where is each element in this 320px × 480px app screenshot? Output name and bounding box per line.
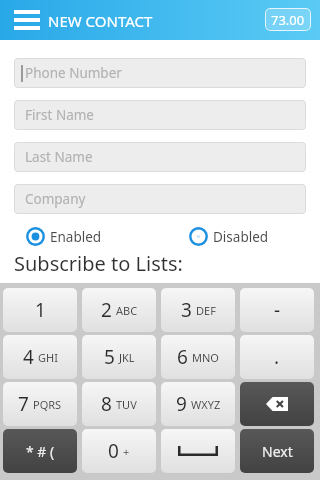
staticText: 7 (18, 391, 29, 417)
button[interactable]: 8 (82, 382, 156, 426)
button[interactable]: Disabled (189, 227, 269, 246)
button[interactable]: Phone Number (14, 58, 306, 88)
staticText: * # ( (26, 442, 55, 461)
staticText: First Name (25, 106, 94, 124)
staticText: - (274, 297, 281, 323)
staticText: MNO (192, 350, 219, 365)
button[interactable]: 3 (161, 288, 235, 332)
staticText: 2 (101, 297, 112, 323)
staticText: WXYZ (191, 397, 221, 412)
staticText: ABC (116, 303, 138, 318)
staticText: + (123, 444, 130, 459)
staticText: Disabled (213, 228, 269, 246)
button[interactable]: 7 (3, 382, 77, 426)
staticText: 8 (101, 391, 112, 417)
button[interactable]: 1 (3, 288, 77, 332)
button[interactable]: Space (161, 429, 235, 473)
staticText: TUV (116, 397, 137, 412)
button[interactable]: Enabled (26, 227, 102, 246)
staticText: Enabled (50, 228, 102, 246)
button[interactable]: Backspace (240, 382, 314, 426)
button[interactable]: 4 (3, 335, 77, 379)
staticText: 1 (35, 297, 46, 323)
staticText: 4 (23, 344, 34, 370)
staticText: Next (262, 442, 293, 461)
staticText: . (274, 344, 280, 370)
staticText: 3 (181, 297, 192, 323)
staticText: 0 (108, 438, 119, 464)
staticText: Last Name (25, 148, 93, 166)
staticText: Subscribe to Lists: (14, 250, 183, 277)
staticText: PQRS (33, 397, 62, 412)
button[interactable]: Next (240, 429, 314, 473)
button[interactable]: Last Name (14, 142, 306, 172)
staticText: Phone Number (25, 64, 122, 82)
staticText: 73.00 (271, 11, 305, 29)
staticText: DEF (196, 303, 216, 318)
button[interactable]: * # ( (3, 429, 77, 473)
button[interactable]: 0 (82, 429, 156, 473)
staticText: 9 (176, 391, 187, 417)
staticText: 6 (177, 344, 188, 370)
button[interactable]: 2 (82, 288, 156, 332)
button[interactable]: 6 (161, 335, 235, 379)
button[interactable]: Company (14, 184, 306, 214)
staticText: GHI (38, 350, 58, 365)
button[interactable]: . (240, 335, 314, 379)
button[interactable]: 73.00 (265, 8, 311, 31)
staticText: Company (25, 190, 86, 208)
button[interactable]: First Name (14, 100, 306, 130)
staticText: NEW CONTACT (48, 11, 153, 31)
button[interactable]: 9 (161, 382, 235, 426)
staticText: JKL (119, 350, 135, 365)
button[interactable]: - (240, 288, 314, 332)
button[interactable]: 5 (82, 335, 156, 379)
staticText: 5 (104, 344, 115, 370)
button[interactable]: Menu (14, 10, 40, 30)
